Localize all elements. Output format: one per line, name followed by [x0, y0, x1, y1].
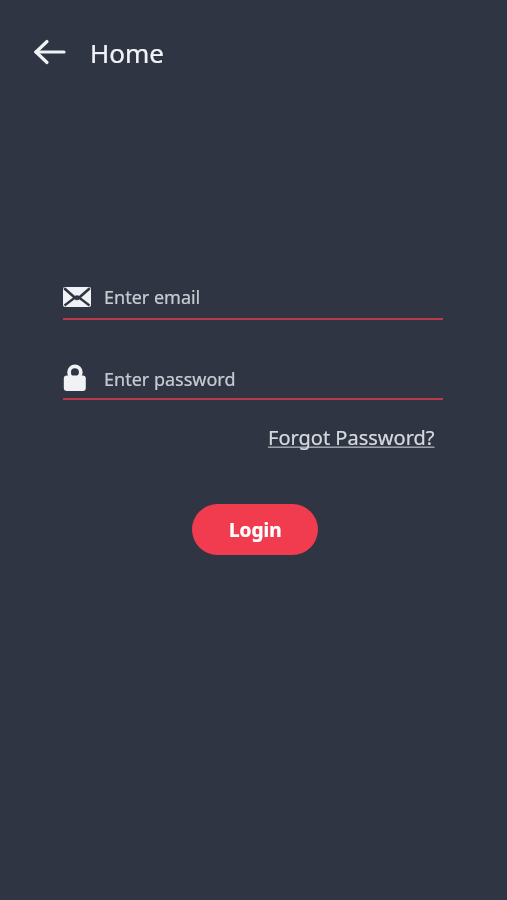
- button[interactable]: [26, 28, 74, 76]
- staticText: Forgot Password?: [268, 424, 435, 451]
- staticText: Home: [90, 35, 164, 70]
- button[interactable]: Forgot Password?: [268, 424, 435, 451]
- staticText: Login: [229, 517, 282, 543]
- staticText: Enter email: [104, 285, 201, 310]
- staticText: Enter password: [104, 367, 236, 392]
- button[interactable]: Login: [192, 504, 318, 555]
